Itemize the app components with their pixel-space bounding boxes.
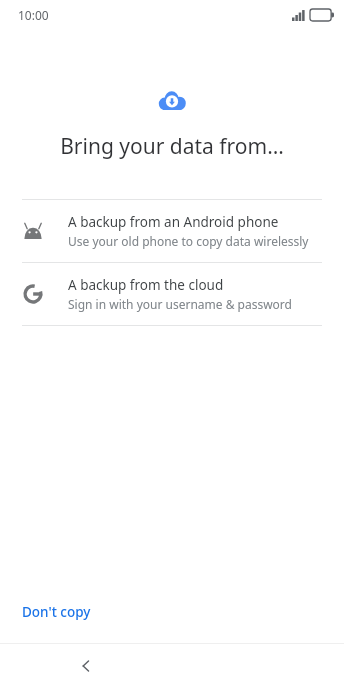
- staticText: A backup from the cloud: [68, 276, 224, 294]
- button[interactable]: A backup from the cloud: [0, 263, 344, 325]
- staticText: Sign in with your username & password: [68, 296, 292, 312]
- button[interactable]: Don't copy: [10, 597, 103, 627]
- staticText: Don't copy: [22, 603, 91, 621]
- staticText: A backup from an Android phone: [68, 213, 279, 231]
- staticText: Bring your data from…: [0, 132, 344, 161]
- staticText: Use your old phone to copy data wireless…: [68, 233, 309, 249]
- staticText: 10:00: [18, 7, 49, 23]
- button[interactable]: Back: [66, 646, 106, 686]
- button[interactable]: A backup from an Android phone: [0, 200, 344, 262]
